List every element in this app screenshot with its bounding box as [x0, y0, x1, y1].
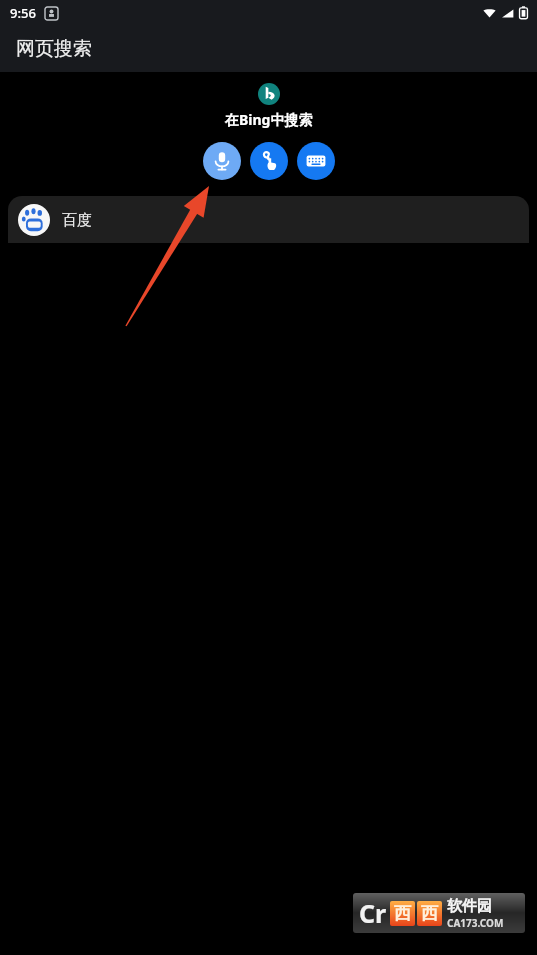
- staticText: 网页搜索: [16, 37, 92, 61]
- staticText: 在Bing中搜索: [225, 110, 313, 129]
- staticText: Cr: [359, 896, 387, 930]
- button[interactable]: Keyboard input: [297, 142, 335, 180]
- staticText: 9:56: [10, 4, 36, 22]
- staticText: 百度: [62, 211, 92, 230]
- staticText: 西: [421, 903, 438, 924]
- button[interactable]: 百度: [8, 196, 529, 243]
- staticText: 软件园: [447, 897, 492, 916]
- button[interactable]: Handwriting input: [250, 142, 288, 180]
- staticText: CA173.COM: [447, 916, 504, 930]
- button[interactable]: Voice search: [203, 142, 241, 180]
- staticText: 西: [394, 903, 411, 924]
